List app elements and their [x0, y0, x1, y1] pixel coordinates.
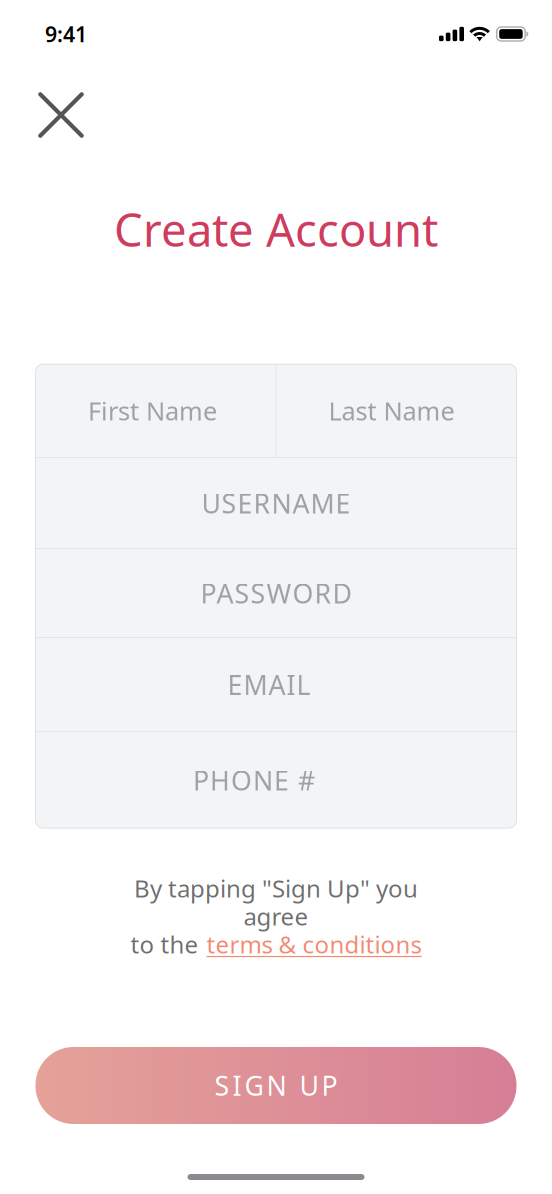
button[interactable]: SIGN UP — [35, 1047, 516, 1124]
staticText: PHONE # — [193, 762, 315, 798]
button[interactable]: Close — [0, 58, 100, 154]
staticText: SIGN UP — [214, 1068, 337, 1103]
staticText: terms & conditions — [206, 928, 421, 960]
staticText: First Name — [88, 394, 217, 427]
staticText: agree — [243, 900, 308, 932]
staticText: EMAIL — [227, 667, 310, 702]
button[interactable]: terms & conditions — [206, 928, 421, 960]
staticText: Create Account — [114, 199, 438, 259]
button[interactable]: First Name — [35, 364, 275, 457]
staticText: By tapping "Sign Up" you — [134, 872, 418, 904]
staticText: PASSWORD — [200, 575, 351, 611]
staticText: USERNAME — [201, 485, 350, 521]
button[interactable]: PASSWORD — [35, 549, 516, 637]
staticText: to the — [130, 928, 198, 960]
staticText: 9:41 — [45, 20, 87, 48]
button[interactable]: EMAIL — [35, 638, 516, 731]
button[interactable]: Last Name — [276, 364, 516, 457]
button[interactable]: PHONE # — [35, 732, 516, 828]
button[interactable]: USERNAME — [35, 458, 516, 548]
staticText: Last Name — [328, 394, 454, 427]
